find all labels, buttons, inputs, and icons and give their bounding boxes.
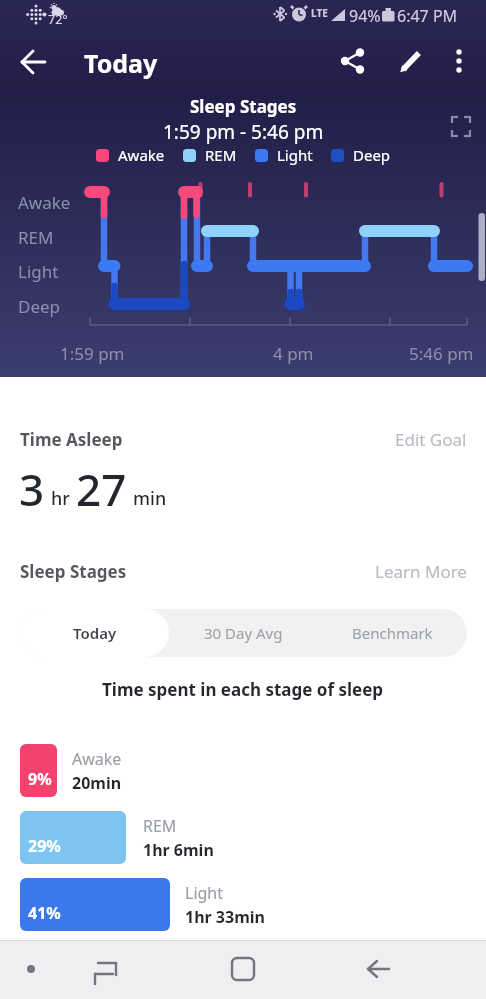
staticText: 20min bbox=[72, 772, 122, 794]
staticText: Light bbox=[277, 145, 313, 165]
staticText: Time Asleep bbox=[20, 428, 123, 451]
staticText: Today bbox=[84, 46, 158, 80]
staticText: 1hr 33min bbox=[185, 906, 265, 928]
staticText: 3 bbox=[19, 459, 45, 519]
staticText: hr bbox=[51, 486, 70, 511]
button[interactable] bbox=[85, 946, 131, 992]
button[interactable] bbox=[220, 946, 266, 992]
button[interactable]: Today bbox=[20, 609, 169, 657]
staticText: 6:47 PM bbox=[397, 5, 458, 27]
button[interactable]: Benchmark bbox=[318, 609, 467, 657]
staticText: 94% bbox=[349, 5, 381, 27]
staticText: Light bbox=[18, 260, 59, 283]
staticText: Time spent in each stage of sleep bbox=[102, 678, 384, 701]
staticText: Deep bbox=[353, 145, 391, 165]
staticText: 1:59 pm bbox=[60, 342, 125, 365]
staticText: 72° bbox=[48, 11, 68, 28]
button[interactable]: Edit Goal bbox=[395, 428, 467, 451]
button[interactable] bbox=[10, 39, 56, 85]
button[interactable]: 30 Day Avg bbox=[169, 609, 318, 657]
staticText: Awake bbox=[18, 191, 71, 214]
staticText: REM bbox=[143, 815, 177, 837]
staticText: 27 bbox=[76, 459, 127, 519]
staticText: Light bbox=[185, 882, 224, 904]
button[interactable] bbox=[330, 39, 374, 83]
button[interactable]: Learn More bbox=[375, 560, 467, 583]
staticText: REM bbox=[205, 145, 237, 165]
staticText: Deep bbox=[18, 295, 61, 318]
staticText: 41% bbox=[28, 902, 61, 924]
button[interactable] bbox=[356, 946, 402, 992]
staticText: Sleep Stages bbox=[20, 560, 127, 583]
staticText: 29% bbox=[28, 835, 61, 857]
button[interactable] bbox=[444, 109, 478, 143]
staticText: LTE bbox=[311, 6, 328, 20]
staticText: Benchmark bbox=[352, 623, 433, 643]
staticText: min bbox=[133, 486, 167, 511]
staticText: 9% bbox=[28, 768, 52, 790]
staticText: 1:59 pm - 5:46 pm bbox=[163, 119, 324, 145]
staticText: Today bbox=[73, 623, 117, 643]
staticText: Awake bbox=[72, 748, 122, 770]
staticText: 5:46 pm bbox=[409, 342, 474, 365]
staticText: REM bbox=[18, 226, 54, 249]
staticText: 30 Day Avg bbox=[204, 623, 283, 643]
staticText: Awake bbox=[118, 145, 165, 165]
staticText: Sleep Stages bbox=[190, 95, 297, 118]
staticText: 4 pm bbox=[273, 342, 314, 365]
button[interactable] bbox=[440, 39, 480, 79]
button[interactable] bbox=[388, 39, 432, 83]
staticText: 1hr 6min bbox=[143, 839, 214, 861]
